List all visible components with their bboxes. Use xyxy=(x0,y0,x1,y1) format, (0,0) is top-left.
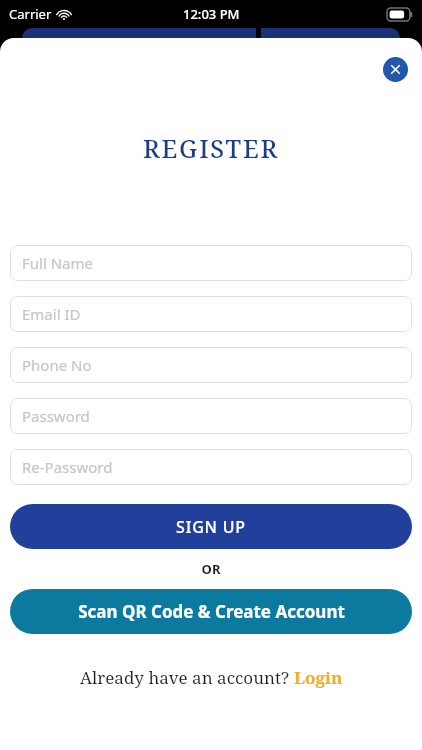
staticText: Email ID xyxy=(22,304,81,324)
button[interactable]: SIGN UP xyxy=(10,504,412,549)
staticText: Re-Password xyxy=(22,457,113,477)
staticText: Login xyxy=(294,666,343,689)
staticText: Scan QR Code & Create Account xyxy=(78,600,345,623)
button[interactable]: Phone No xyxy=(10,347,412,383)
staticText: OR xyxy=(10,560,412,578)
staticText: 12:03 PM xyxy=(183,5,240,23)
staticText: Full Name xyxy=(22,253,93,273)
staticText: SIGN UP xyxy=(176,516,246,538)
staticText: Carrier xyxy=(9,5,52,23)
button[interactable]: Re-Password xyxy=(10,449,412,485)
button[interactable]: Email ID xyxy=(10,296,412,332)
staticText: Phone No xyxy=(22,355,92,375)
staticText: Already have an account? xyxy=(80,666,294,689)
button[interactable]: Scan QR Code & Create Account xyxy=(10,589,412,634)
staticText: Password xyxy=(22,406,90,426)
button[interactable]: Login xyxy=(294,666,343,689)
button[interactable]: Close xyxy=(383,57,408,82)
button[interactable]: Full Name xyxy=(10,245,412,281)
button[interactable]: Password xyxy=(10,398,412,434)
staticText: REGISTER xyxy=(0,131,422,165)
